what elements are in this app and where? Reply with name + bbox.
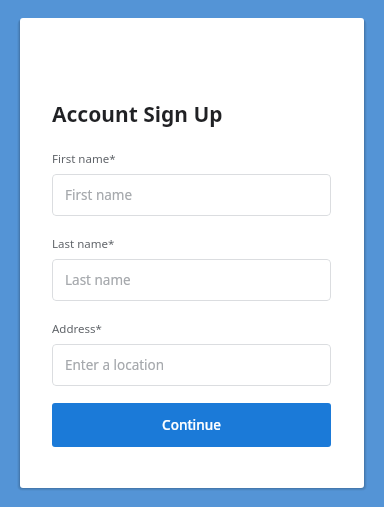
staticText: Address*	[52, 321, 102, 337]
button[interactable]: First name	[52, 174, 331, 216]
staticText: Enter a location	[65, 356, 165, 374]
staticText: Account Sign Up	[52, 100, 223, 129]
button[interactable]: Enter a location	[52, 344, 331, 386]
button[interactable]: Last name	[52, 259, 331, 301]
staticText: First name*	[52, 151, 116, 167]
staticText: Last name	[65, 271, 131, 289]
staticText: First name	[65, 186, 133, 204]
button[interactable]: Continue	[52, 403, 331, 447]
staticText: Continue	[162, 416, 221, 434]
staticText: Last name*	[52, 236, 115, 252]
